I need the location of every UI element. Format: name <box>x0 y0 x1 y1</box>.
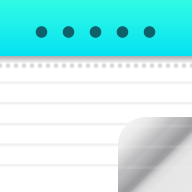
button[interactable]: Notepad <box>0 0 192 192</box>
